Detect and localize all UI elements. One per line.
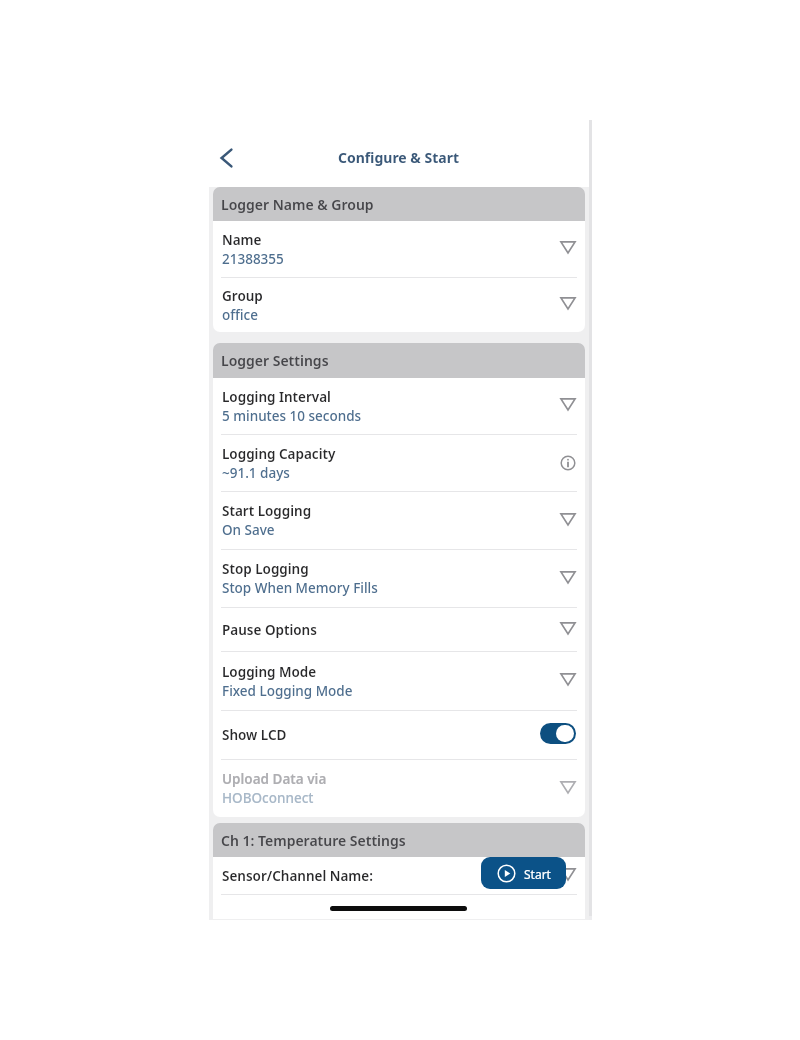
staticText: Logger Name & Group	[221, 195, 374, 214]
staticText: Fixed Logging Mode	[222, 682, 353, 700]
button[interactable]: Show LCD toggle	[540, 723, 576, 744]
staticText: HOBOconnect	[222, 789, 314, 807]
staticText: 5 minutes 10 seconds	[222, 407, 362, 425]
staticText: Logging Interval	[222, 388, 331, 406]
staticText: Upload Data via	[222, 770, 327, 788]
button[interactable]: Logging Capacity	[213, 435, 585, 491]
button[interactable]: Sensor/Channel Name:	[213, 857, 585, 894]
button[interactable]: Stop Logging	[213, 550, 585, 607]
button[interactable]: Logging Mode	[213, 652, 585, 710]
staticText: ~91.1 days	[222, 464, 290, 482]
button[interactable]: Back	[207, 139, 245, 177]
button[interactable]: Group	[213, 278, 585, 332]
staticText: Logger Settings	[221, 351, 329, 370]
staticText: office	[222, 306, 258, 324]
staticText: 21388355	[222, 250, 284, 268]
staticText: Show LCD	[222, 726, 287, 744]
staticText: Logging Mode	[222, 663, 317, 681]
button[interactable]: Show LCD	[213, 711, 585, 759]
button[interactable]: Logging Interval	[213, 378, 585, 434]
staticText: Sensor/Channel Name:	[222, 867, 373, 885]
staticText: Logging Capacity	[222, 445, 336, 463]
staticText: Ch 1: Temperature Settings	[221, 831, 406, 850]
staticText: Start Logging	[222, 502, 312, 520]
staticText: Pause Options	[222, 621, 317, 639]
staticText: On Save	[222, 521, 275, 539]
button[interactable]: Upload Data via	[213, 760, 585, 817]
staticText: Start	[524, 866, 551, 882]
button[interactable]: Pause Options	[213, 608, 585, 651]
staticText: Configure & Start	[338, 148, 460, 167]
button[interactable]: Name	[213, 221, 585, 277]
staticText: Name	[222, 231, 262, 249]
staticText: Group	[222, 287, 263, 305]
staticText: Stop Logging	[222, 560, 309, 578]
button[interactable]: Start	[481, 857, 566, 889]
staticText: Stop When Memory Fills	[222, 579, 378, 597]
button[interactable]: Start Logging	[213, 492, 585, 549]
